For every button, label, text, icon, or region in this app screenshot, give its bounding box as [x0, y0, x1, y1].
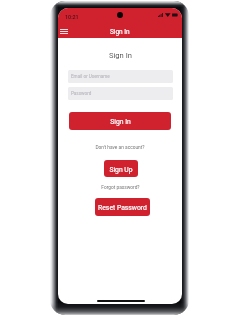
button[interactable]: Email or Username: [68, 70, 173, 83]
staticText: Don't have an account?: [95, 145, 145, 151]
staticText: Sign In: [110, 118, 131, 126]
staticText: Password: [71, 91, 92, 96]
staticText: Sign In: [109, 51, 132, 60]
staticText: Forgot password?: [101, 185, 140, 191]
staticText: Reset Password: [98, 204, 147, 212]
button[interactable]: Reset Password: [95, 198, 150, 216]
button[interactable]: Sign Up: [104, 160, 138, 177]
staticText: Sign Up: [109, 166, 133, 174]
button[interactable]: Password: [68, 87, 173, 100]
button[interactable]: Open navigation menu: [58, 26, 70, 37]
button[interactable]: Sign In: [69, 112, 171, 130]
staticText: Sign In: [110, 28, 130, 36]
staticText: 10:21: [65, 14, 79, 20]
button[interactable]: Don't have an account?: [95, 145, 145, 151]
button[interactable]: Forgot password?: [101, 185, 140, 191]
staticText: Email or Username: [71, 74, 110, 79]
